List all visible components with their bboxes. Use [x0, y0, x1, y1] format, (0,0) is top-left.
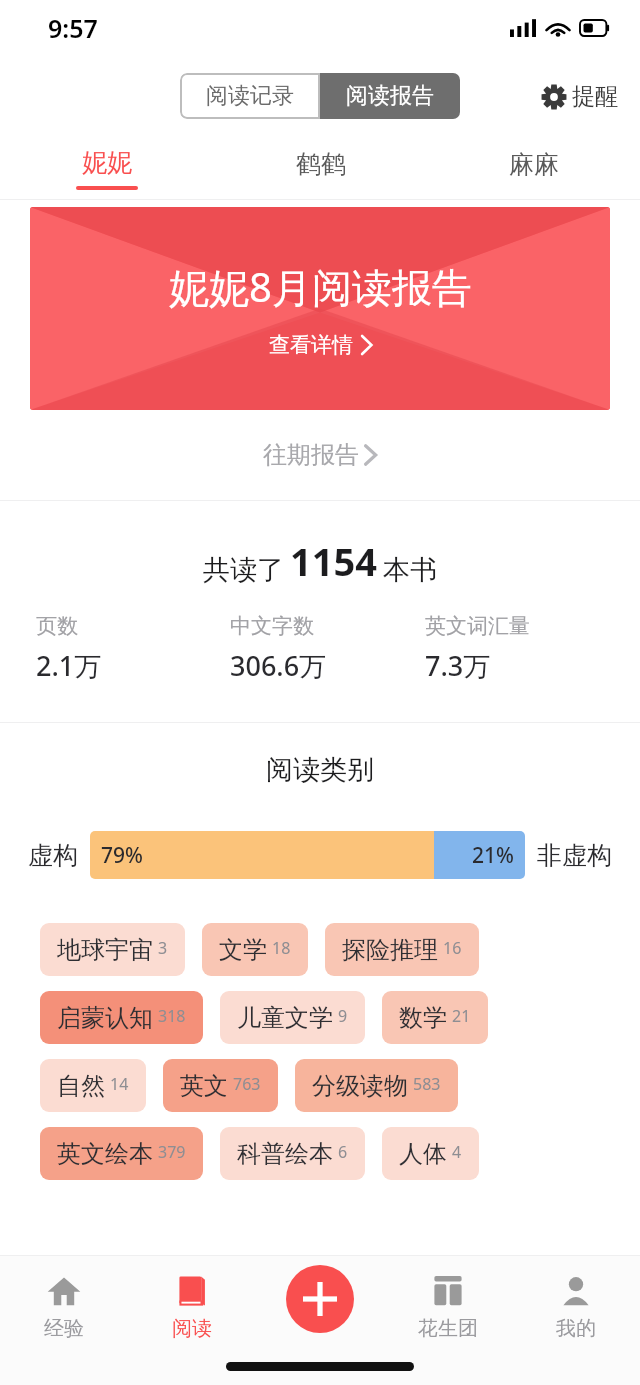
staticText: 妮妮 [82, 147, 132, 178]
staticText: 查看详情 [269, 332, 353, 358]
staticText: 2.1万 [36, 647, 102, 684]
staticText: 数学 [399, 1003, 447, 1033]
button[interactable]: 人体 [382, 1127, 479, 1180]
staticText: 地球宇宙 [57, 935, 153, 965]
staticText: 探险推理 [342, 935, 438, 965]
button[interactable]: 探险推理 [325, 923, 479, 976]
staticText: 经验 [44, 1316, 84, 1341]
staticText: 科普绘本 [237, 1139, 333, 1169]
button[interactable]: 阅读 [128, 1255, 256, 1359]
button[interactable]: 提醒 [541, 82, 618, 111]
staticText: 花生团 [418, 1316, 478, 1341]
staticText: 14 [110, 1073, 129, 1095]
button[interactable]: 花生团 [384, 1255, 512, 1359]
staticText: 6 [338, 1141, 348, 1163]
staticText: 18 [272, 937, 291, 959]
staticText: 9:57 [48, 11, 98, 45]
staticText: 21% [472, 841, 514, 870]
staticText: 阅读类别 [266, 753, 374, 787]
staticText: 共读了 [203, 553, 284, 587]
staticText: 3 [158, 937, 168, 959]
staticText: 79% [101, 841, 143, 870]
button[interactable]: 启蒙认知 [40, 991, 203, 1044]
staticText: 16 [443, 937, 462, 959]
staticText: 本书 [383, 553, 437, 587]
button[interactable]: 麻麻 [427, 136, 640, 200]
staticText: 21 [452, 1005, 471, 1027]
staticText: 583 [413, 1073, 441, 1095]
button[interactable]: 英文绘本 [40, 1127, 203, 1180]
button[interactable]: 妮妮 [0, 136, 214, 200]
button[interactable]: 英文 [163, 1059, 278, 1112]
staticText: 自然 [57, 1071, 105, 1101]
staticText: 页数 [36, 613, 78, 639]
button[interactable]: 我的 [512, 1255, 640, 1359]
staticText: 虚构 [28, 840, 78, 871]
button[interactable]: 阅读记录 [180, 73, 320, 119]
button[interactable]: Add [286, 1265, 354, 1333]
staticText: 非虚构 [537, 840, 612, 871]
button[interactable]: 儿童文学 [220, 991, 365, 1044]
staticText: 阅读 [172, 1316, 212, 1341]
button[interactable]: 数学 [382, 991, 488, 1044]
button[interactable]: 分级读物 [295, 1059, 458, 1112]
staticText: 妮妮8月阅读报告 [169, 259, 472, 314]
staticText: 中文字数 [230, 613, 314, 639]
staticText: 鹤鹤 [296, 149, 346, 180]
button[interactable]: 科普绘本 [220, 1127, 365, 1180]
staticText: 启蒙认知 [57, 1003, 153, 1033]
staticText: 提醒 [572, 82, 618, 111]
staticText: 麻麻 [509, 149, 559, 180]
staticText: 分级读物 [312, 1071, 408, 1101]
staticText: 阅读报告 [346, 82, 434, 110]
staticText: 英文词汇量 [425, 613, 530, 639]
staticText: 往期报告 [263, 440, 359, 470]
staticText: 763 [233, 1073, 261, 1095]
staticText: 306.6万 [230, 647, 327, 684]
button[interactable]: 鹤鹤 [214, 136, 427, 200]
staticText: 文学 [219, 935, 267, 965]
staticText: 英文 [180, 1071, 228, 1101]
staticText: 人体 [399, 1139, 447, 1169]
staticText: 儿童文学 [237, 1003, 333, 1033]
button[interactable]: 经验 [0, 1255, 128, 1359]
button[interactable]: 文学 [202, 923, 308, 976]
staticText: 9 [338, 1005, 348, 1027]
staticText: 4 [452, 1141, 462, 1163]
button[interactable]: 妮妮8月阅读报告 [30, 207, 610, 410]
button[interactable]: 地球宇宙 [40, 923, 185, 976]
staticText: 379 [158, 1141, 186, 1163]
staticText: 我的 [556, 1316, 596, 1341]
staticText: 1154 [290, 535, 377, 587]
button[interactable]: 自然 [40, 1059, 146, 1112]
button[interactable]: 阅读报告 [320, 73, 460, 119]
staticText: 阅读记录 [206, 82, 294, 110]
staticText: 英文绘本 [57, 1139, 153, 1169]
staticText: 318 [158, 1005, 186, 1027]
button[interactable]: 往期报告 [263, 440, 377, 470]
staticText: 7.3万 [425, 647, 491, 684]
